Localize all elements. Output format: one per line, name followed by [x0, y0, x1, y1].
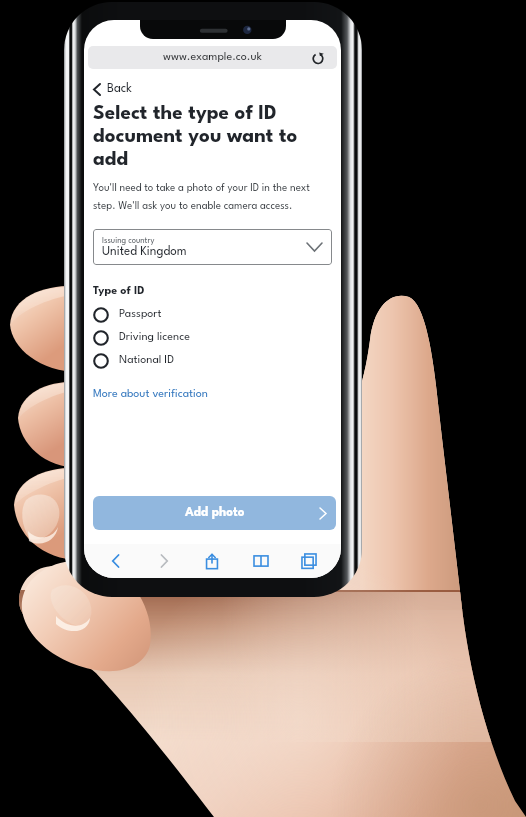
- staticText: United Kingdom: [102, 246, 187, 258]
- button[interactable]: Bookmarks: [245, 545, 277, 577]
- button[interactable]: Passport: [93, 303, 333, 326]
- staticText: Passport: [119, 309, 162, 320]
- button[interactable]: Back: [93, 81, 132, 97]
- button[interactable]: www.example.co.uk: [88, 46, 337, 69]
- button[interactable]: Driving licence: [93, 326, 333, 349]
- staticText: Back: [107, 83, 132, 95]
- button[interactable]: Share: [196, 545, 228, 577]
- staticText: Type of ID: [93, 286, 145, 297]
- staticText: National ID: [119, 355, 174, 366]
- button[interactable]: More about verification: [93, 389, 208, 400]
- button[interactable]: National ID: [93, 349, 333, 372]
- staticText: www.example.co.uk: [163, 52, 262, 63]
- staticText: You'll need to take a photo of your ID i…: [93, 183, 333, 212]
- staticText: Issuing country: [102, 237, 155, 245]
- button[interactable]: Add photo: [93, 496, 336, 530]
- button[interactable]: Reload: [311, 51, 325, 65]
- staticText: Select the type of ID document you want …: [93, 104, 337, 169]
- button[interactable]: Back: [100, 545, 132, 577]
- staticText: Driving licence: [119, 332, 190, 343]
- staticText: Add photo: [185, 507, 245, 519]
- button[interactable]: Issuing country: [93, 229, 332, 265]
- button[interactable]: Forward: [148, 545, 180, 577]
- button[interactable]: Tabs: [293, 545, 325, 577]
